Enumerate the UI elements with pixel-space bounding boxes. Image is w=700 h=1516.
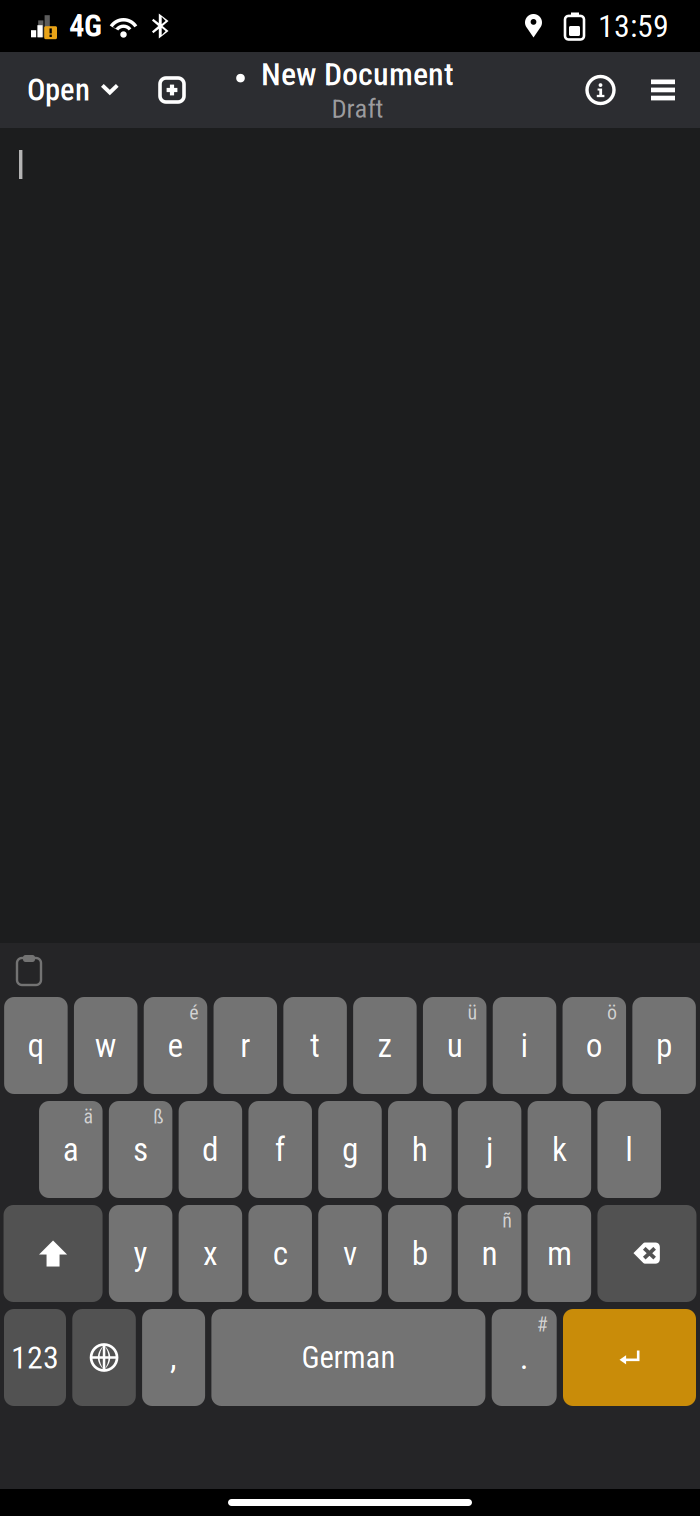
staticText: 4G <box>69 8 102 44</box>
staticText: e <box>167 1026 183 1065</box>
button[interactable]: p <box>632 997 696 1094</box>
staticText: r <box>240 1026 250 1065</box>
button[interactable]: Backspace <box>597 1205 696 1302</box>
staticText: v <box>343 1234 357 1273</box>
staticText: d <box>202 1130 219 1169</box>
button[interactable]: Menu <box>637 63 689 116</box>
button[interactable]: o <box>562 997 626 1094</box>
staticText: w <box>95 1026 117 1065</box>
staticText: p <box>656 1026 672 1065</box>
staticText: # <box>537 1313 548 1336</box>
button[interactable]: c <box>248 1205 312 1302</box>
button[interactable]: r <box>213 997 277 1094</box>
staticText: m <box>547 1234 572 1273</box>
staticText: . <box>520 1338 529 1377</box>
button[interactable]: g <box>318 1101 382 1198</box>
button[interactable]: y <box>109 1205 172 1302</box>
button[interactable]: Clipboard <box>0 943 58 997</box>
button[interactable]: Switch language <box>72 1309 136 1406</box>
button[interactable]: i <box>493 997 556 1094</box>
staticText: n <box>482 1234 498 1273</box>
staticText: Open <box>27 72 90 108</box>
staticText: z <box>377 1026 392 1065</box>
staticText: s <box>133 1130 148 1169</box>
staticText: k <box>552 1130 567 1169</box>
button[interactable]: q <box>4 997 68 1094</box>
button[interactable]: n <box>458 1205 521 1302</box>
staticText: , <box>170 1338 177 1377</box>
button[interactable]: Open <box>16 60 130 120</box>
button[interactable]: z <box>353 997 417 1094</box>
button[interactable]: u <box>423 997 486 1094</box>
staticText: a <box>63 1130 79 1169</box>
button[interactable]: b <box>388 1205 452 1302</box>
staticText: o <box>586 1026 603 1065</box>
staticText: 123 <box>11 1339 59 1376</box>
staticText: ä <box>84 1105 94 1128</box>
staticText: c <box>273 1234 288 1273</box>
staticText: ü <box>467 1001 477 1024</box>
staticText: x <box>203 1234 218 1273</box>
staticText: l <box>625 1130 633 1169</box>
button[interactable]: m <box>528 1205 591 1302</box>
staticText: u <box>447 1026 463 1065</box>
staticText: New Document <box>261 56 454 93</box>
staticText: i <box>520 1026 528 1065</box>
button[interactable]: d <box>179 1101 242 1198</box>
staticText: é <box>189 1001 198 1024</box>
staticText: q <box>27 1026 44 1065</box>
staticText: ß <box>153 1105 163 1128</box>
button[interactable]: Return <box>563 1309 696 1406</box>
button[interactable]: , <box>142 1309 205 1406</box>
button[interactable]: German <box>211 1309 485 1406</box>
button[interactable]: x <box>179 1205 242 1302</box>
button[interactable]: New document <box>130 66 202 114</box>
staticText: ö <box>607 1001 617 1024</box>
button[interactable]: w <box>74 997 137 1094</box>
staticText: g <box>342 1130 358 1169</box>
button[interactable]: h <box>388 1101 452 1198</box>
staticText: t <box>310 1026 320 1065</box>
button[interactable]: a <box>39 1101 103 1198</box>
button[interactable]: e <box>144 997 207 1094</box>
button[interactable]: l <box>597 1101 661 1198</box>
staticText: German <box>301 1339 395 1375</box>
staticText: f <box>275 1130 286 1169</box>
button[interactable]: s <box>109 1101 172 1198</box>
staticText: y <box>134 1234 148 1273</box>
button[interactable]: Info <box>573 64 637 115</box>
staticText: Draft <box>331 93 383 124</box>
button[interactable]: . <box>492 1309 557 1406</box>
button[interactable]: 123 <box>4 1309 66 1406</box>
staticText: ñ <box>502 1209 512 1232</box>
staticText: 13:59 <box>598 7 669 45</box>
staticText: b <box>412 1234 428 1273</box>
button[interactable]: v <box>318 1205 382 1302</box>
button[interactable]: t <box>283 997 347 1094</box>
button[interactable]: k <box>528 1101 591 1198</box>
button[interactable]: Shift <box>4 1205 103 1302</box>
button[interactable]: f <box>248 1101 312 1198</box>
staticText: j <box>486 1130 493 1169</box>
button[interactable]: j <box>458 1101 521 1198</box>
staticText: h <box>412 1130 428 1169</box>
